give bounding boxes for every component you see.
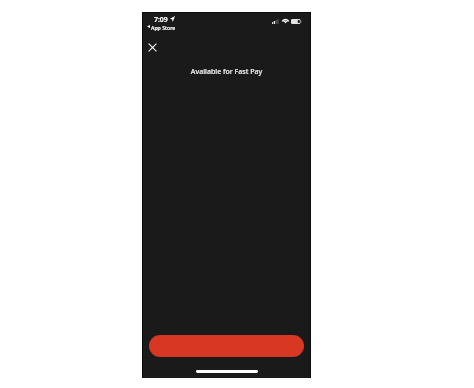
button[interactable] bbox=[149, 335, 304, 357]
button[interactable]: Close bbox=[141, 36, 163, 58]
staticText: Available for Fast Pay bbox=[142, 67, 311, 77]
staticText: 7:09 bbox=[154, 15, 168, 24]
staticText: App Store bbox=[151, 24, 176, 31]
